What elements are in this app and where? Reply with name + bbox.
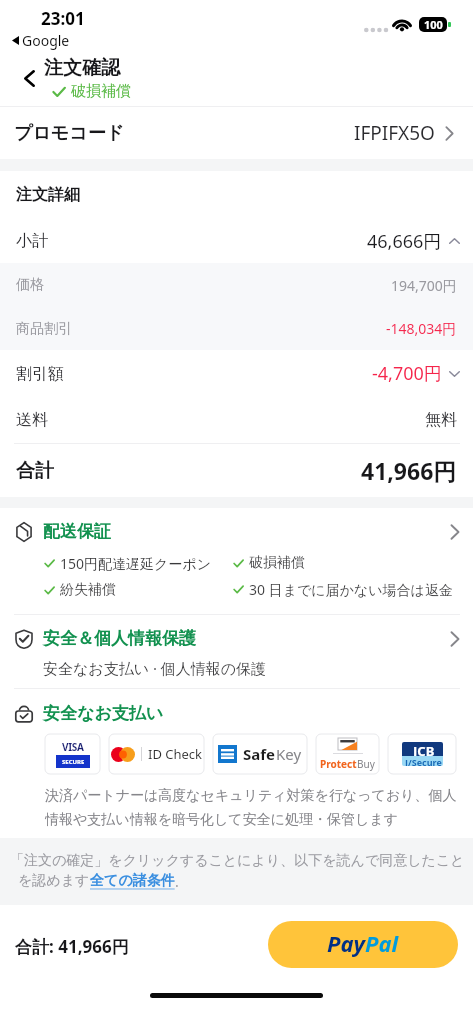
staticText: 全ての諸条件 xyxy=(90,872,175,890)
button[interactable]: PayPal xyxy=(268,921,458,968)
staticText: 安全＆個人情報保護 xyxy=(43,628,196,649)
staticText: 30 日までに届かない場合は返金 xyxy=(249,580,453,599)
staticText: VISA xyxy=(62,740,84,754)
staticText: 46,666円 xyxy=(367,229,442,254)
staticText: 情報や支払い情報を暗号化して安全に処理・保管します xyxy=(45,811,398,829)
staticText: Pal xyxy=(365,928,399,958)
staticText: 合計: 41,966円 xyxy=(15,935,129,958)
staticText: Key xyxy=(276,744,302,764)
staticText: Safe xyxy=(243,744,276,764)
staticText: Protect xyxy=(320,757,357,771)
staticText: プロモコード xyxy=(14,122,125,145)
button[interactable]: プロモコード xyxy=(0,107,473,159)
staticText: Google xyxy=(22,31,70,50)
staticText: J/Secure xyxy=(405,756,442,766)
staticText: Pay xyxy=(327,928,365,958)
button[interactable]: 割引額 xyxy=(0,350,473,397)
button[interactable]: 配送保証 xyxy=(0,508,473,614)
staticText: 決済パートナーは高度なセキュリティ対策を行なっており、個人 xyxy=(45,787,457,805)
staticText: 商品割引 xyxy=(16,320,72,338)
staticText: 無料 xyxy=(425,410,457,430)
staticText: IFPIFX5O xyxy=(354,120,435,146)
staticText: 割引額 xyxy=(16,364,64,384)
staticText: 小計 xyxy=(16,231,48,251)
staticText: を認めます xyxy=(18,872,90,890)
staticText: 安全なお支払い · 個人情報の保護 xyxy=(43,658,267,678)
staticText: 注文詳細 xyxy=(16,185,80,205)
staticText: SECURE xyxy=(62,758,85,766)
staticText: Buy xyxy=(357,757,375,771)
staticText: 価格 xyxy=(16,276,44,294)
staticText: 合計 xyxy=(16,459,54,483)
staticText: 注文確認 xyxy=(44,56,120,80)
staticText: 100 xyxy=(424,17,443,32)
staticText: 安全なお支払い xyxy=(43,703,164,724)
staticText: -148,034円 xyxy=(386,319,457,338)
staticText: 送料 xyxy=(16,410,48,430)
button[interactable]: Back xyxy=(7,56,51,100)
staticText: 194,700円 xyxy=(391,276,457,295)
staticText: 配送保証 xyxy=(43,521,111,542)
staticText: ID Check xyxy=(148,745,203,763)
staticText: 破損補償 xyxy=(71,82,131,101)
staticText: JCB xyxy=(413,742,435,756)
staticText: 「注文の確定」をクリックすることにより、以下を読んで同意したこと xyxy=(10,852,465,870)
button[interactable]: 安全＆個人情報保護 xyxy=(0,615,473,688)
staticText: 41,966円 xyxy=(361,455,457,486)
staticText: 紛失補償 xyxy=(60,581,116,599)
staticText: 150円配達遅延クーポン xyxy=(60,554,212,573)
staticText: 破損補償 xyxy=(249,554,305,572)
staticText: . xyxy=(175,872,179,891)
button[interactable]: 小計 xyxy=(0,219,473,263)
staticText: 23:01 xyxy=(41,7,85,30)
staticText: -4,700円 xyxy=(372,361,442,386)
